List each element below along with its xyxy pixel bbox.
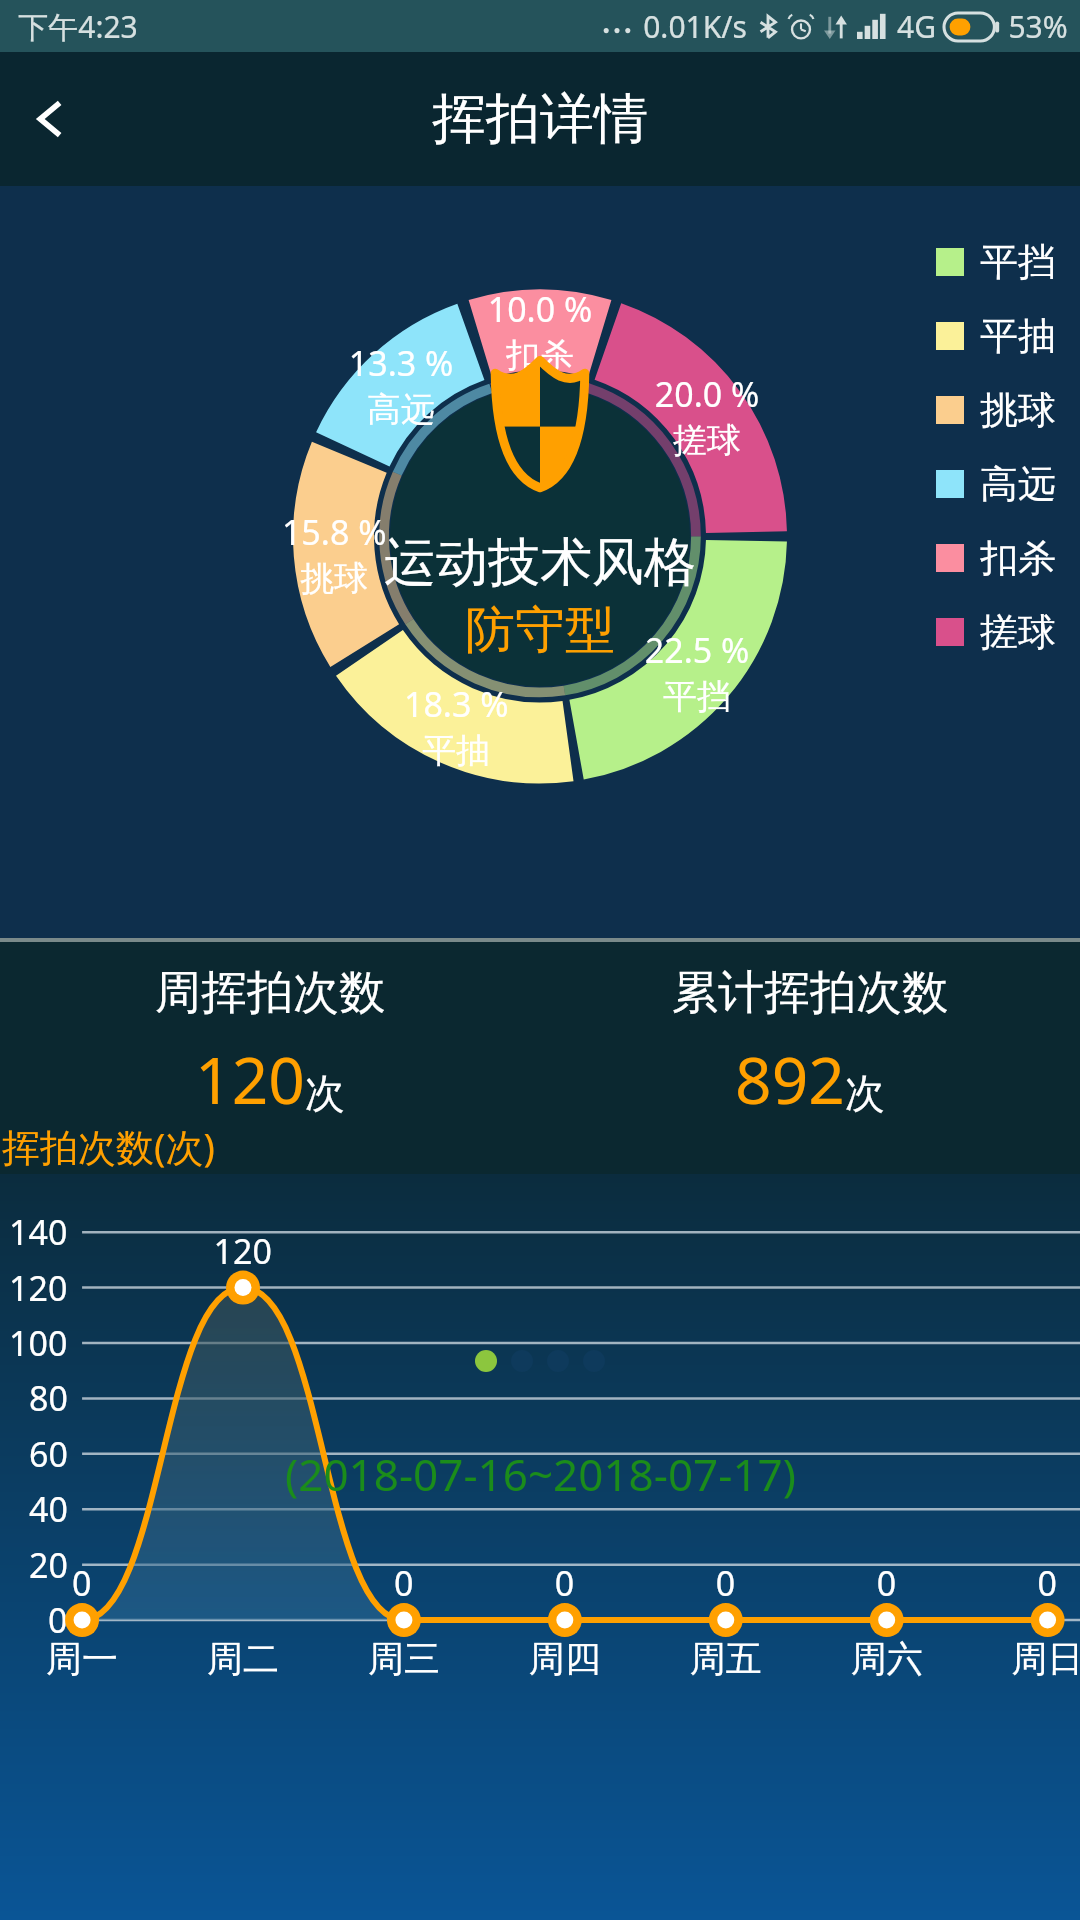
staticText: 挥拍次数(次) [2, 1120, 215, 1172]
button[interactable]: 扣杀 [936, 534, 1056, 582]
staticText: 0.01K/s [643, 6, 747, 47]
button[interactable]: Page 3 [547, 1350, 569, 1372]
button[interactable]: 累计挥拍次数 [540, 964, 1080, 1123]
staticText: 次 [845, 1068, 885, 1118]
button[interactable]: Page 2 [511, 1350, 533, 1372]
button[interactable]: Back [12, 80, 90, 158]
staticText: 次 [305, 1068, 345, 1118]
staticText: 下午4:23 [18, 6, 138, 47]
staticText: 892 [735, 1036, 845, 1123]
button[interactable]: 平挡 [936, 238, 1056, 286]
staticText: 搓球 [980, 608, 1056, 656]
button[interactable]: 挑球 [936, 386, 1056, 434]
staticText: 平挡 [980, 238, 1056, 286]
button[interactable]: Page 1 [475, 1350, 497, 1372]
button[interactable]: 搓球 [936, 608, 1056, 656]
button[interactable]: Page 4 [583, 1350, 605, 1372]
staticText: 平抽 [980, 312, 1056, 360]
button[interactable]: 周挥拍次数 [0, 964, 540, 1123]
button[interactable]: 高远 [936, 460, 1056, 508]
staticText: (2018-07-16~2018-07-17) [285, 1444, 796, 1504]
staticText: 4G [897, 6, 936, 47]
staticText: 高远 [980, 460, 1056, 508]
staticText: 120 [195, 1036, 305, 1123]
button[interactable]: 平抽 [936, 312, 1056, 360]
staticText: 累计挥拍次数 [672, 964, 948, 1022]
staticText: 周挥拍次数 [155, 964, 385, 1022]
staticText: 挑球 [980, 386, 1056, 434]
staticText: 挥拍详情 [432, 85, 648, 153]
staticText: 53% [1008, 6, 1068, 47]
staticText: 扣杀 [980, 534, 1056, 582]
